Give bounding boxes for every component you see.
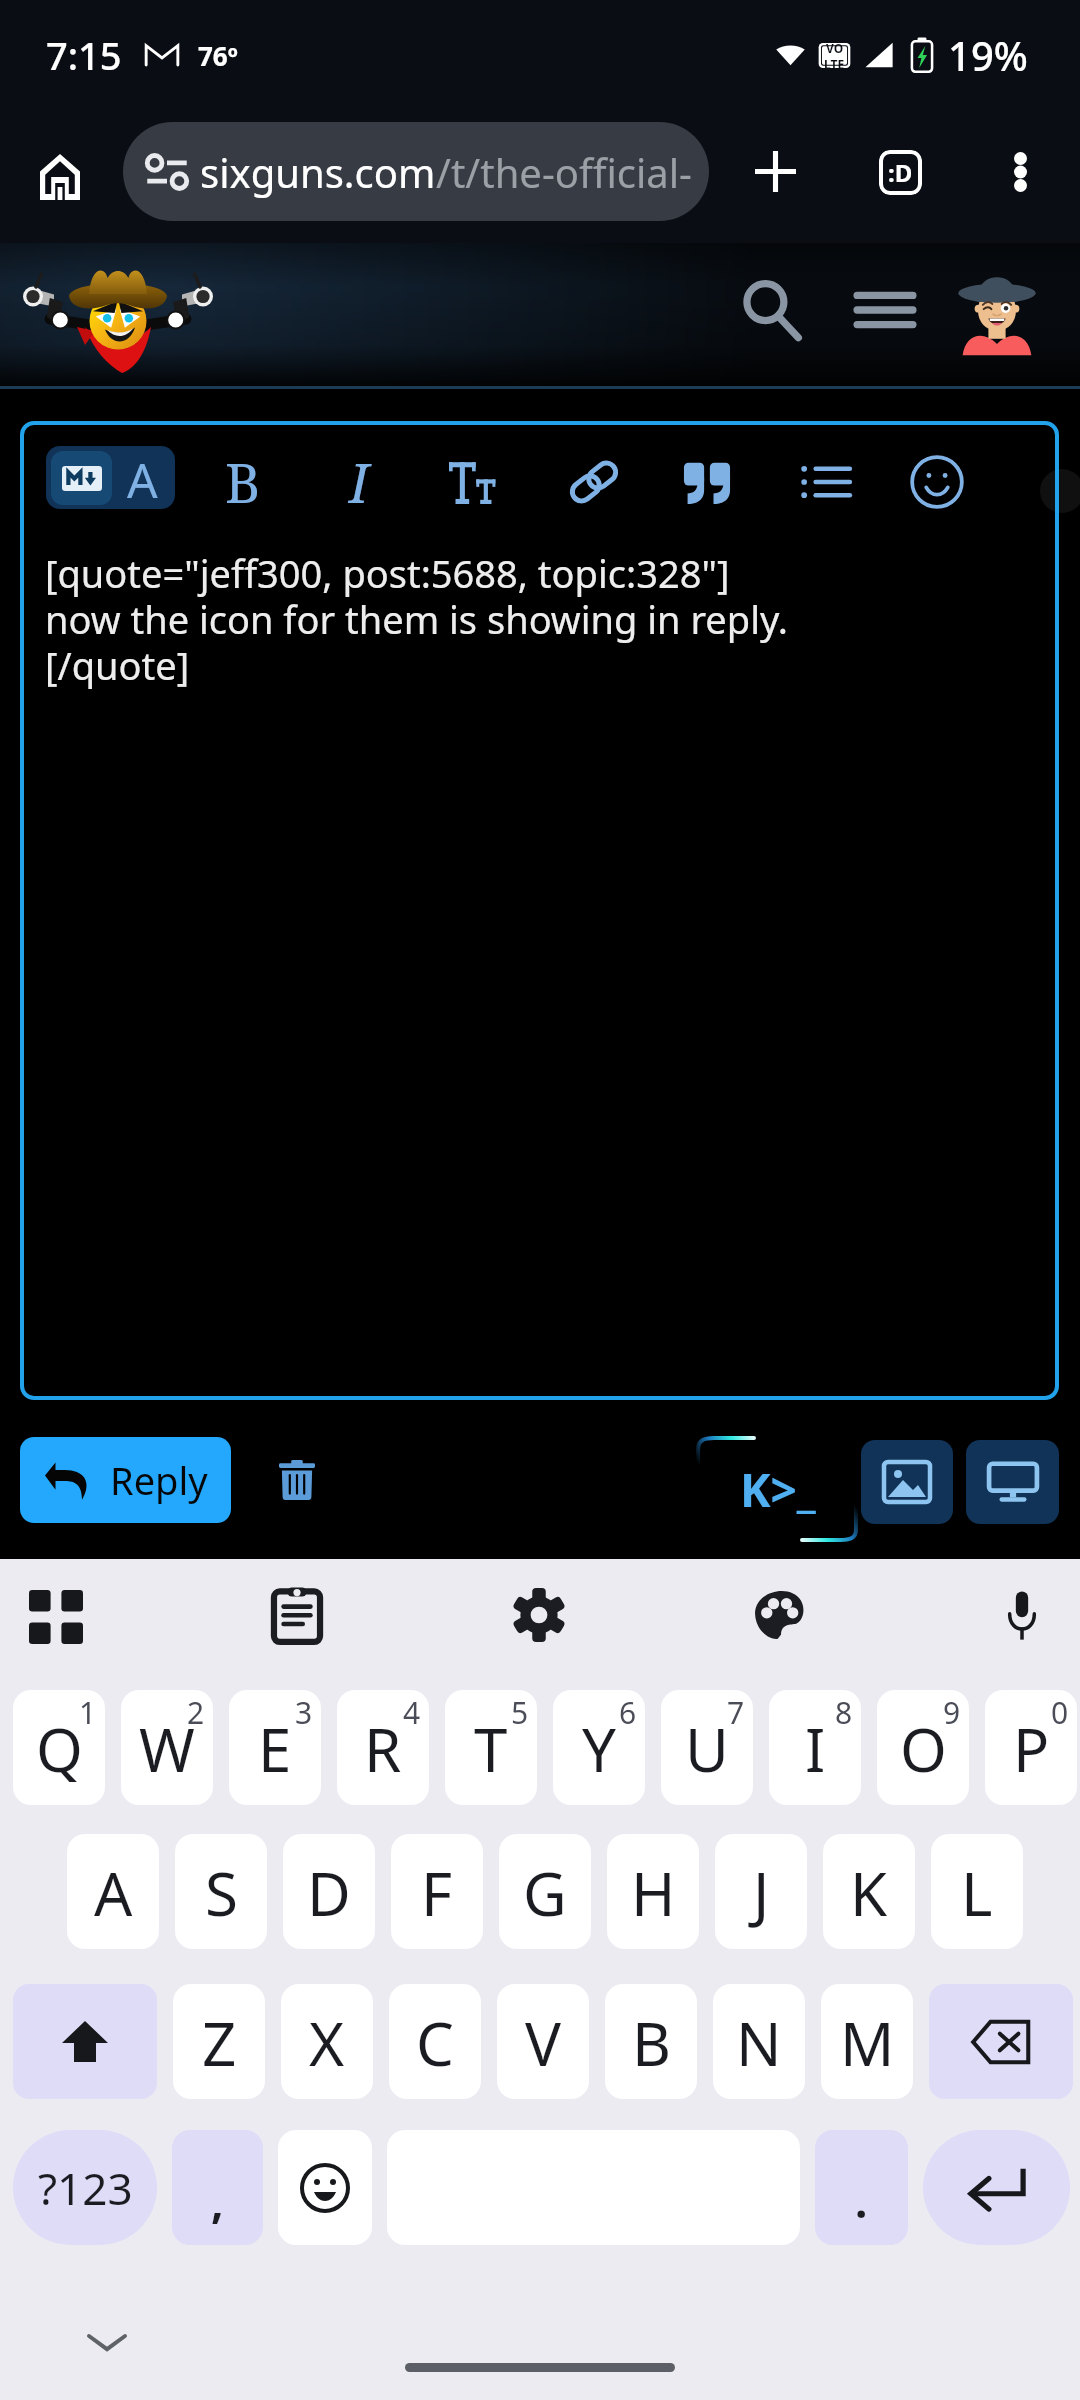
- button[interactable]: Delete draft: [253, 1436, 341, 1524]
- button[interactable]: sixguns.com: [123, 122, 709, 221]
- button[interactable]: Insert image: [861, 1440, 953, 1524]
- staticText: 5: [511, 1692, 529, 1733]
- button[interactable]: H: [607, 1834, 699, 1949]
- staticText: ,: [211, 2171, 224, 2231]
- button[interactable]: Bold: [190, 429, 296, 535]
- staticText: S: [205, 1852, 238, 1934]
- button[interactable]: D: [283, 1834, 375, 1949]
- staticText: :D: [888, 156, 913, 189]
- button[interactable]: ,: [172, 2130, 263, 2245]
- button[interactable]: Apps: [6, 1565, 106, 1665]
- staticText: H: [631, 1852, 676, 1934]
- button[interactable]: Backspace: [929, 1984, 1073, 2099]
- button[interactable]: Clipboard: [247, 1565, 347, 1665]
- button[interactable]: B: [605, 1984, 697, 2099]
- staticText: 3: [295, 1692, 313, 1733]
- staticText: K>_: [740, 1458, 816, 1521]
- button[interactable]: Theme: [730, 1565, 830, 1665]
- button[interactable]: Reply: [20, 1437, 231, 1523]
- button[interactable]: .: [815, 2130, 908, 2245]
- button[interactable]: Q: [13, 1690, 105, 1805]
- staticText: O: [900, 1708, 947, 1790]
- button[interactable]: Keyboard shortcut: [690, 1430, 868, 1548]
- button[interactable]: Heading: [425, 429, 531, 535]
- button[interactable]: F: [391, 1834, 483, 1949]
- button[interactable]: K: [823, 1834, 915, 1949]
- button[interactable]: ?123: [13, 2130, 157, 2245]
- staticText: Q: [36, 1708, 83, 1790]
- button[interactable]: Settings: [489, 1565, 589, 1665]
- button[interactable]: I: [769, 1690, 861, 1805]
- staticText: L: [961, 1852, 993, 1934]
- button[interactable]: Enter: [923, 2130, 1070, 2245]
- button[interactable]: R: [337, 1690, 429, 1805]
- staticText: LTE: [824, 56, 845, 72]
- button[interactable]: Switch tabs: [856, 128, 944, 216]
- staticText: A: [127, 447, 158, 509]
- staticText: T: [474, 1708, 508, 1790]
- button[interactable]: Preview: [966, 1440, 1059, 1524]
- button[interactable]: X: [281, 1984, 373, 2099]
- staticText: 7:15: [46, 29, 122, 81]
- staticText: Z: [202, 2002, 237, 2084]
- button[interactable]: Voice input: [972, 1565, 1072, 1665]
- button[interactable]: G: [499, 1834, 591, 1949]
- button[interactable]: Y: [553, 1690, 645, 1805]
- staticText: B: [632, 2002, 671, 2084]
- button[interactable]: Menu: [839, 264, 931, 356]
- button[interactable]: N: [713, 1984, 805, 2099]
- button[interactable]: New tab: [731, 127, 819, 215]
- staticText: I: [349, 445, 369, 519]
- button[interactable]: Hide keyboard: [77, 2320, 137, 2364]
- staticText: ?123: [38, 2158, 133, 2218]
- button[interactable]: O: [877, 1690, 969, 1805]
- button[interactable]: V: [497, 1984, 589, 2099]
- staticText: V: [525, 2002, 561, 2084]
- staticText: E: [258, 1708, 292, 1790]
- button[interactable]: W: [121, 1690, 213, 1805]
- button[interactable]: Shift: [13, 1984, 157, 2099]
- button[interactable]: Home: [24, 120, 96, 233]
- button[interactable]: Bulleted list: [773, 429, 879, 535]
- button[interactable]: U: [661, 1690, 753, 1805]
- staticText: K: [850, 1852, 888, 1934]
- staticText: [quote="jeff300, post:5688, topic:328"] …: [45, 547, 789, 691]
- staticText: C: [416, 2002, 454, 2084]
- button[interactable]: Emoji: [884, 429, 990, 535]
- staticText: sixguns.com: [200, 145, 436, 199]
- button[interactable]: Markdown mode: [46, 446, 175, 509]
- button[interactable]: P: [985, 1690, 1077, 1805]
- button[interactable]: Profile: [951, 267, 1043, 359]
- staticText: 76º: [198, 38, 238, 73]
- staticText: I: [805, 1708, 826, 1790]
- button[interactable]: J: [715, 1834, 807, 1949]
- button[interactable]: Italic: [306, 429, 412, 535]
- button[interactable]: Link: [541, 429, 647, 535]
- button[interactable]: S: [175, 1834, 267, 1949]
- staticText: N: [736, 2002, 782, 2084]
- staticText: 7: [727, 1692, 745, 1733]
- button[interactable]: Z: [173, 1984, 265, 2099]
- button[interactable]: A: [67, 1834, 159, 1949]
- staticText: G: [523, 1852, 567, 1934]
- button[interactable]: M: [821, 1984, 913, 2099]
- staticText: 0: [1051, 1692, 1069, 1733]
- staticText: 1: [79, 1692, 97, 1733]
- button[interactable]: Emoji: [278, 2130, 372, 2245]
- staticText: J: [753, 1852, 770, 1934]
- staticText: 2: [187, 1692, 205, 1733]
- staticText: M: [840, 2002, 895, 2084]
- button[interactable]: More options: [976, 128, 1064, 216]
- button[interactable]: Search: [726, 264, 818, 356]
- staticText: R: [364, 1708, 402, 1790]
- staticText: 8: [835, 1692, 853, 1733]
- button[interactable]: E: [229, 1690, 321, 1805]
- button[interactable]: Quote: [654, 429, 760, 535]
- staticText: 6: [619, 1692, 637, 1733]
- button[interactable]: L: [931, 1834, 1023, 1949]
- button[interactable]: T: [445, 1690, 537, 1805]
- staticText: Reply: [110, 1454, 208, 1506]
- staticText: .: [855, 2171, 868, 2231]
- button[interactable]: C: [389, 1984, 481, 2099]
